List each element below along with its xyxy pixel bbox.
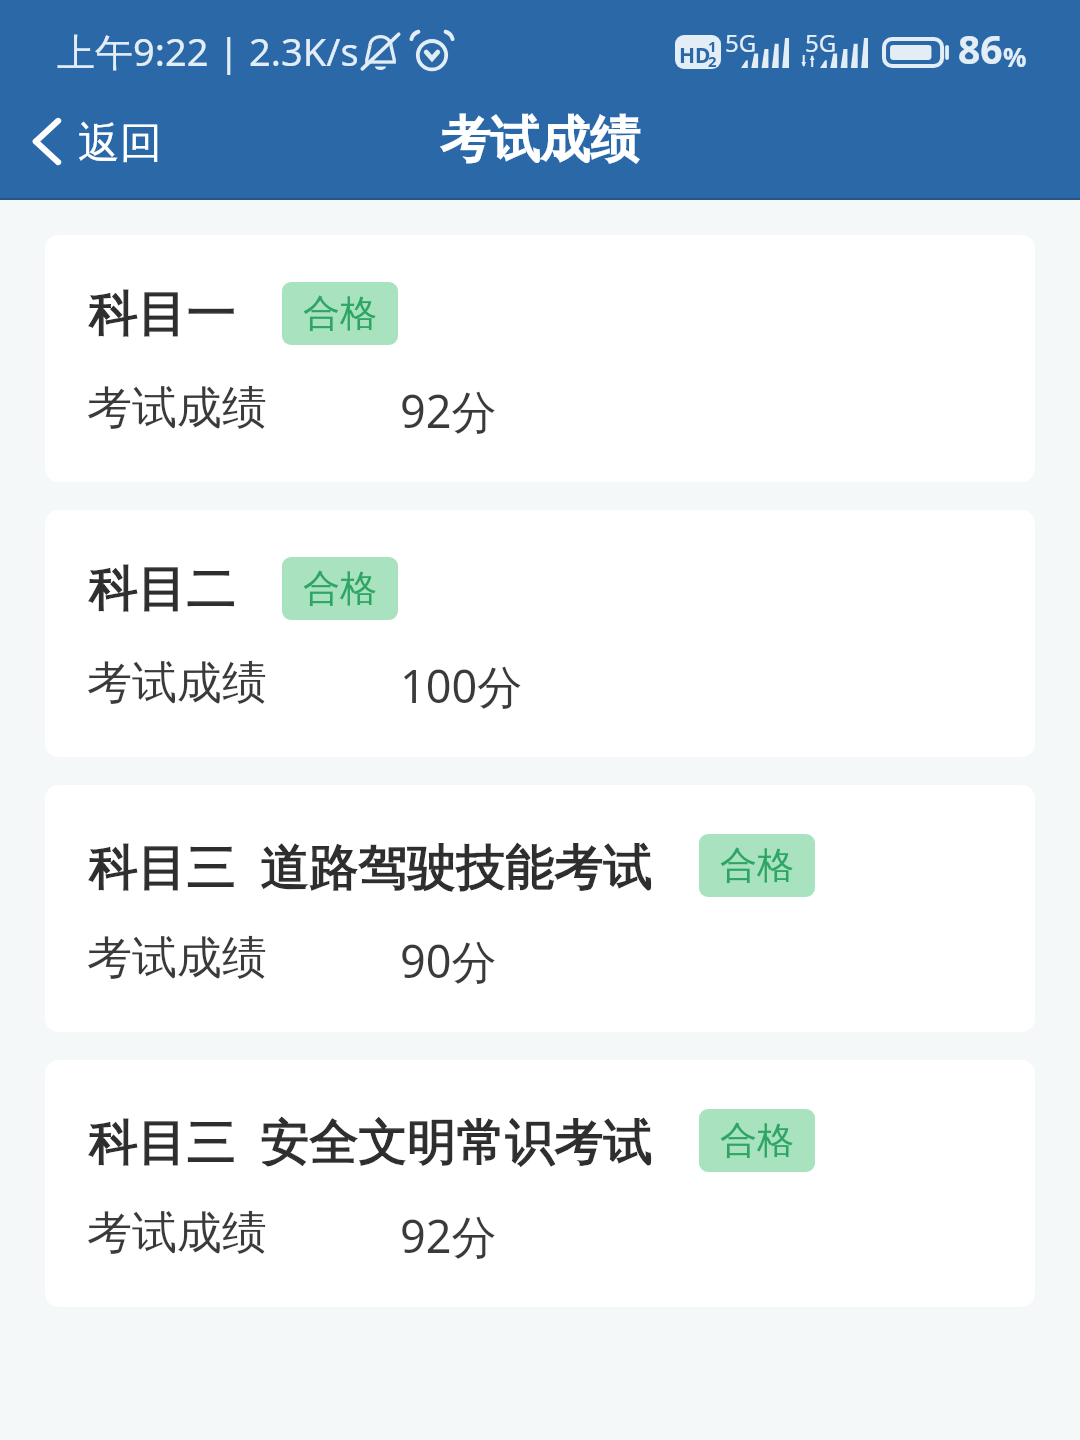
other: Battery 86 percent xyxy=(882,37,951,68)
staticText: 考试成绩 xyxy=(87,930,267,987)
staticText: 92分 xyxy=(400,380,497,441)
staticText: 科目三 安全文明常识考试 xyxy=(89,1107,653,1174)
button[interactable]: 科目三 安全文明常识考试 xyxy=(45,1060,1035,1307)
staticText: 考试成绩 xyxy=(87,1205,267,1262)
staticText: 返回 xyxy=(78,117,162,170)
staticText: 90分 xyxy=(400,930,497,991)
staticText: HD xyxy=(679,41,711,69)
other: Silent mode xyxy=(363,32,398,70)
staticText: 科目三 道路驾驶技能考试 xyxy=(89,832,653,899)
other: Alarm set xyxy=(412,32,452,70)
staticText: 合格 xyxy=(720,842,794,889)
other: Back xyxy=(33,118,61,165)
staticText: 92分 xyxy=(400,1205,497,1266)
staticText: 合格 xyxy=(720,1117,794,1164)
staticText: 科目三 安全文明常识考试 xyxy=(89,1107,653,1174)
staticText: 1 xyxy=(708,36,717,56)
staticText: 科目一 xyxy=(89,283,236,345)
staticText: 考试成绩 xyxy=(87,380,267,437)
staticText: 5G xyxy=(725,26,757,59)
staticText: 科目二 xyxy=(89,558,236,620)
staticText: 科目一 xyxy=(89,283,236,345)
button[interactable]: 科目三 道路驾驶技能考试 xyxy=(45,785,1035,1032)
staticText: 上午9:22 | 2.3K/s xyxy=(57,25,359,77)
staticText: 考试成绩 xyxy=(440,109,640,172)
staticText: 100分 xyxy=(400,655,523,716)
staticText: 考试成绩 xyxy=(87,655,267,712)
staticText: 科目二 xyxy=(89,558,236,620)
button[interactable]: 科目一 xyxy=(45,235,1035,482)
staticText: 科目三 道路驾驶技能考试 xyxy=(89,832,653,899)
staticText: 合格 xyxy=(303,290,377,337)
staticText: 86 xyxy=(958,22,1003,75)
button[interactable]: 科目二 xyxy=(45,510,1035,757)
staticText: 2 xyxy=(708,51,717,69)
staticText: 5G xyxy=(805,26,837,59)
staticText: 合格 xyxy=(303,565,377,612)
button[interactable]: Back xyxy=(0,100,190,189)
staticText: % xyxy=(1003,39,1027,74)
